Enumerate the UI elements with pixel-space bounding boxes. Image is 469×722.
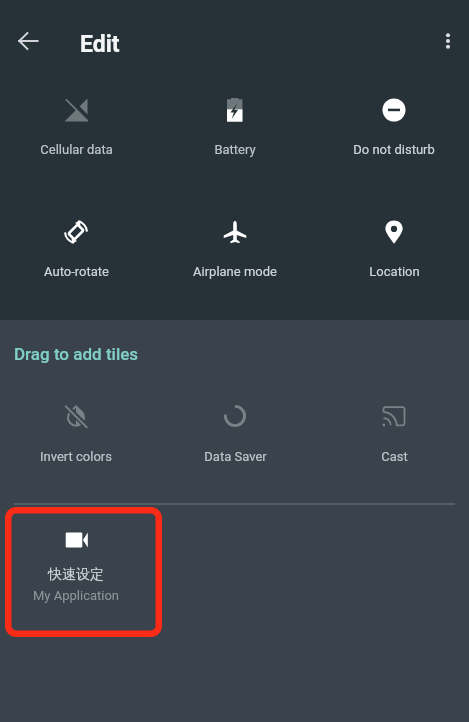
staticText: Airplane mode bbox=[193, 264, 277, 279]
staticText: Data Saver bbox=[204, 449, 267, 464]
staticText: My Application bbox=[33, 588, 120, 603]
staticText: Auto-rotate bbox=[44, 264, 109, 279]
staticText: Cellular data bbox=[40, 142, 113, 157]
button[interactable]: Battery bbox=[160, 82, 310, 169]
button[interactable]: Do not disturb bbox=[319, 82, 469, 169]
staticText: Drag to add tiles bbox=[14, 344, 139, 364]
button[interactable]: More options bbox=[424, 17, 469, 65]
button[interactable]: Back bbox=[4, 17, 52, 65]
staticText: Do not disturb bbox=[353, 142, 435, 157]
staticText: Battery bbox=[214, 142, 256, 157]
staticText: Invert colors bbox=[40, 449, 112, 464]
staticText: Cast bbox=[381, 449, 408, 464]
staticText: Location bbox=[369, 264, 420, 279]
button[interactable]: 快速设定 bbox=[1, 508, 151, 636]
button[interactable]: Auto-rotate bbox=[1, 204, 151, 291]
button[interactable]: Airplane mode bbox=[160, 204, 310, 291]
staticText: Edit bbox=[80, 31, 120, 58]
button[interactable]: Cellular data bbox=[1, 82, 151, 169]
button[interactable]: Invert colors bbox=[1, 388, 151, 476]
button[interactable]: Cast bbox=[319, 388, 469, 476]
staticText: 快速设定 bbox=[48, 566, 104, 584]
button[interactable]: Data Saver bbox=[160, 388, 310, 476]
button[interactable]: Location bbox=[319, 204, 469, 291]
